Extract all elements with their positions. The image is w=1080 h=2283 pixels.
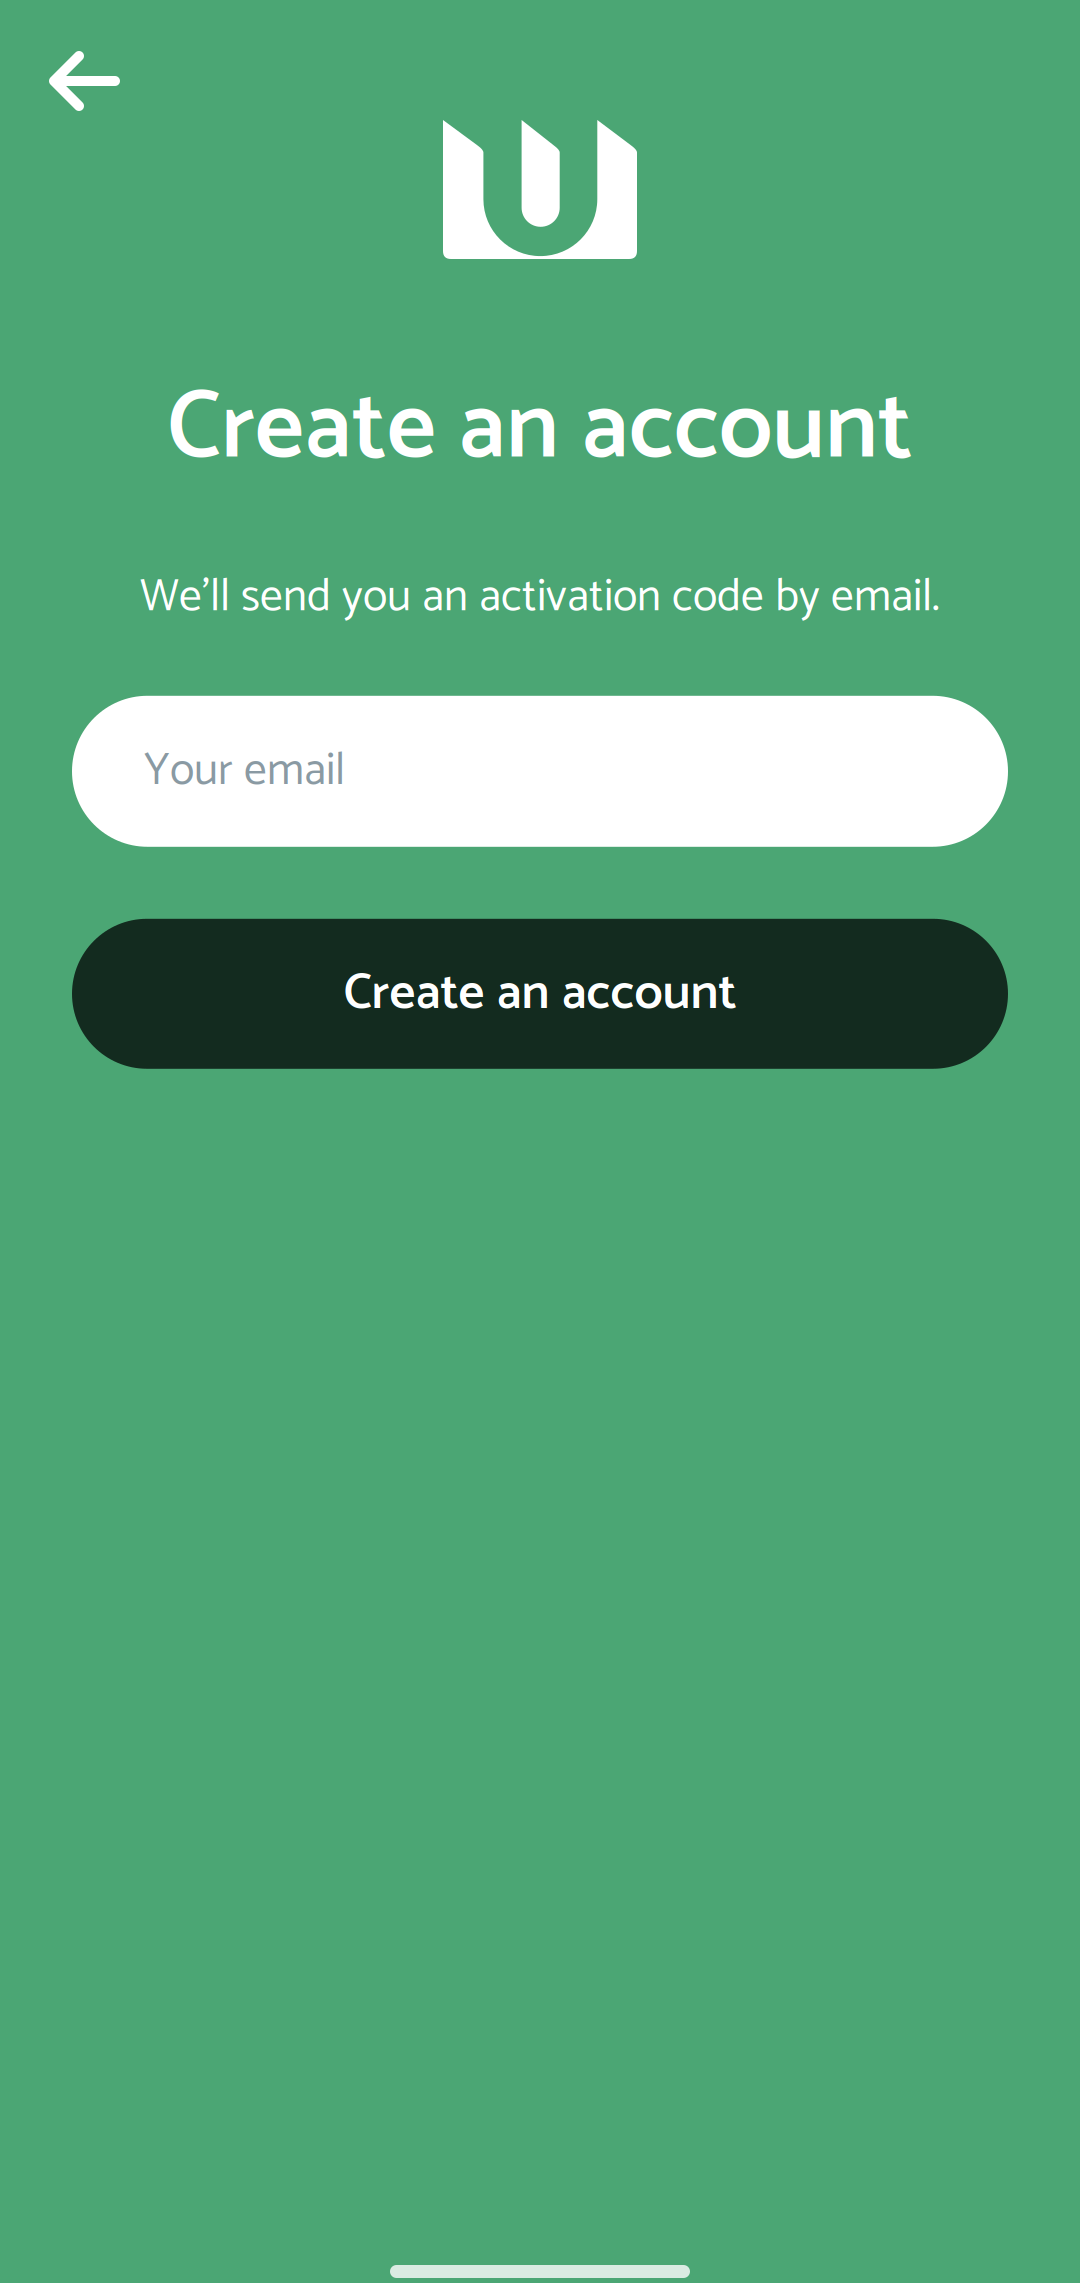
button[interactable]: Your email [72,696,1008,847]
button[interactable]: Create an account [72,919,1008,1069]
staticText: Create an account [167,351,913,508]
staticText: Your email [144,734,345,808]
button[interactable]: Back [0,0,151,140]
staticText: We'll send you an activation code by ema… [140,560,940,635]
staticText: Create an account [343,952,736,1035]
